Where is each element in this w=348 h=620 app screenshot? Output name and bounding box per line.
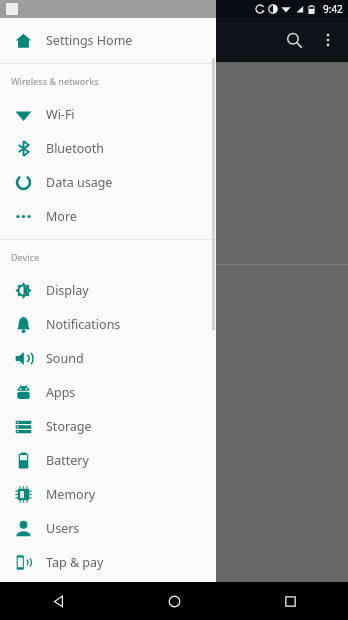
staticText: Users (46, 520, 80, 537)
button[interactable]: Users (0, 511, 216, 545)
staticText: Device (11, 251, 40, 263)
button[interactable]: Sound (0, 341, 216, 375)
button[interactable]: Home (116, 582, 232, 620)
button[interactable]: Recents (232, 582, 348, 620)
staticText: More (46, 208, 77, 225)
staticText: Sound (46, 350, 84, 367)
button[interactable]: Display (0, 273, 216, 307)
staticText: Wireless & networks (11, 75, 99, 87)
button[interactable]: Battery (0, 443, 216, 477)
button[interactable]: Apps (0, 375, 216, 409)
button[interactable]: Notifications (0, 307, 216, 341)
button[interactable]: Tap & pay (0, 545, 216, 579)
staticText: Notifications (46, 316, 121, 333)
staticText: 9:42 (323, 2, 343, 16)
staticText: Apps (46, 384, 76, 401)
button[interactable]: Data usage (0, 165, 216, 199)
button[interactable]: Storage (0, 409, 216, 443)
button[interactable]: Back (0, 582, 116, 620)
staticText: Settings Home (46, 32, 133, 49)
button[interactable]: Memory (0, 477, 216, 511)
button[interactable]: Wi-Fi (0, 97, 216, 131)
button[interactable]: Settings Home (0, 18, 216, 63)
button[interactable]: More options (312, 24, 344, 56)
button[interactable]: Bluetooth (0, 131, 216, 165)
staticText: Tap & pay (46, 554, 104, 571)
staticText: Display (46, 282, 89, 299)
button[interactable]: More (0, 199, 216, 233)
staticText: Wi-Fi (46, 106, 75, 123)
staticText: Memory (46, 486, 96, 503)
staticText: Data usage (46, 174, 113, 191)
staticText: Battery (46, 452, 89, 469)
staticText: Bluetooth (46, 140, 105, 157)
button[interactable]: Search (276, 22, 312, 58)
staticText: Storage (46, 418, 92, 435)
